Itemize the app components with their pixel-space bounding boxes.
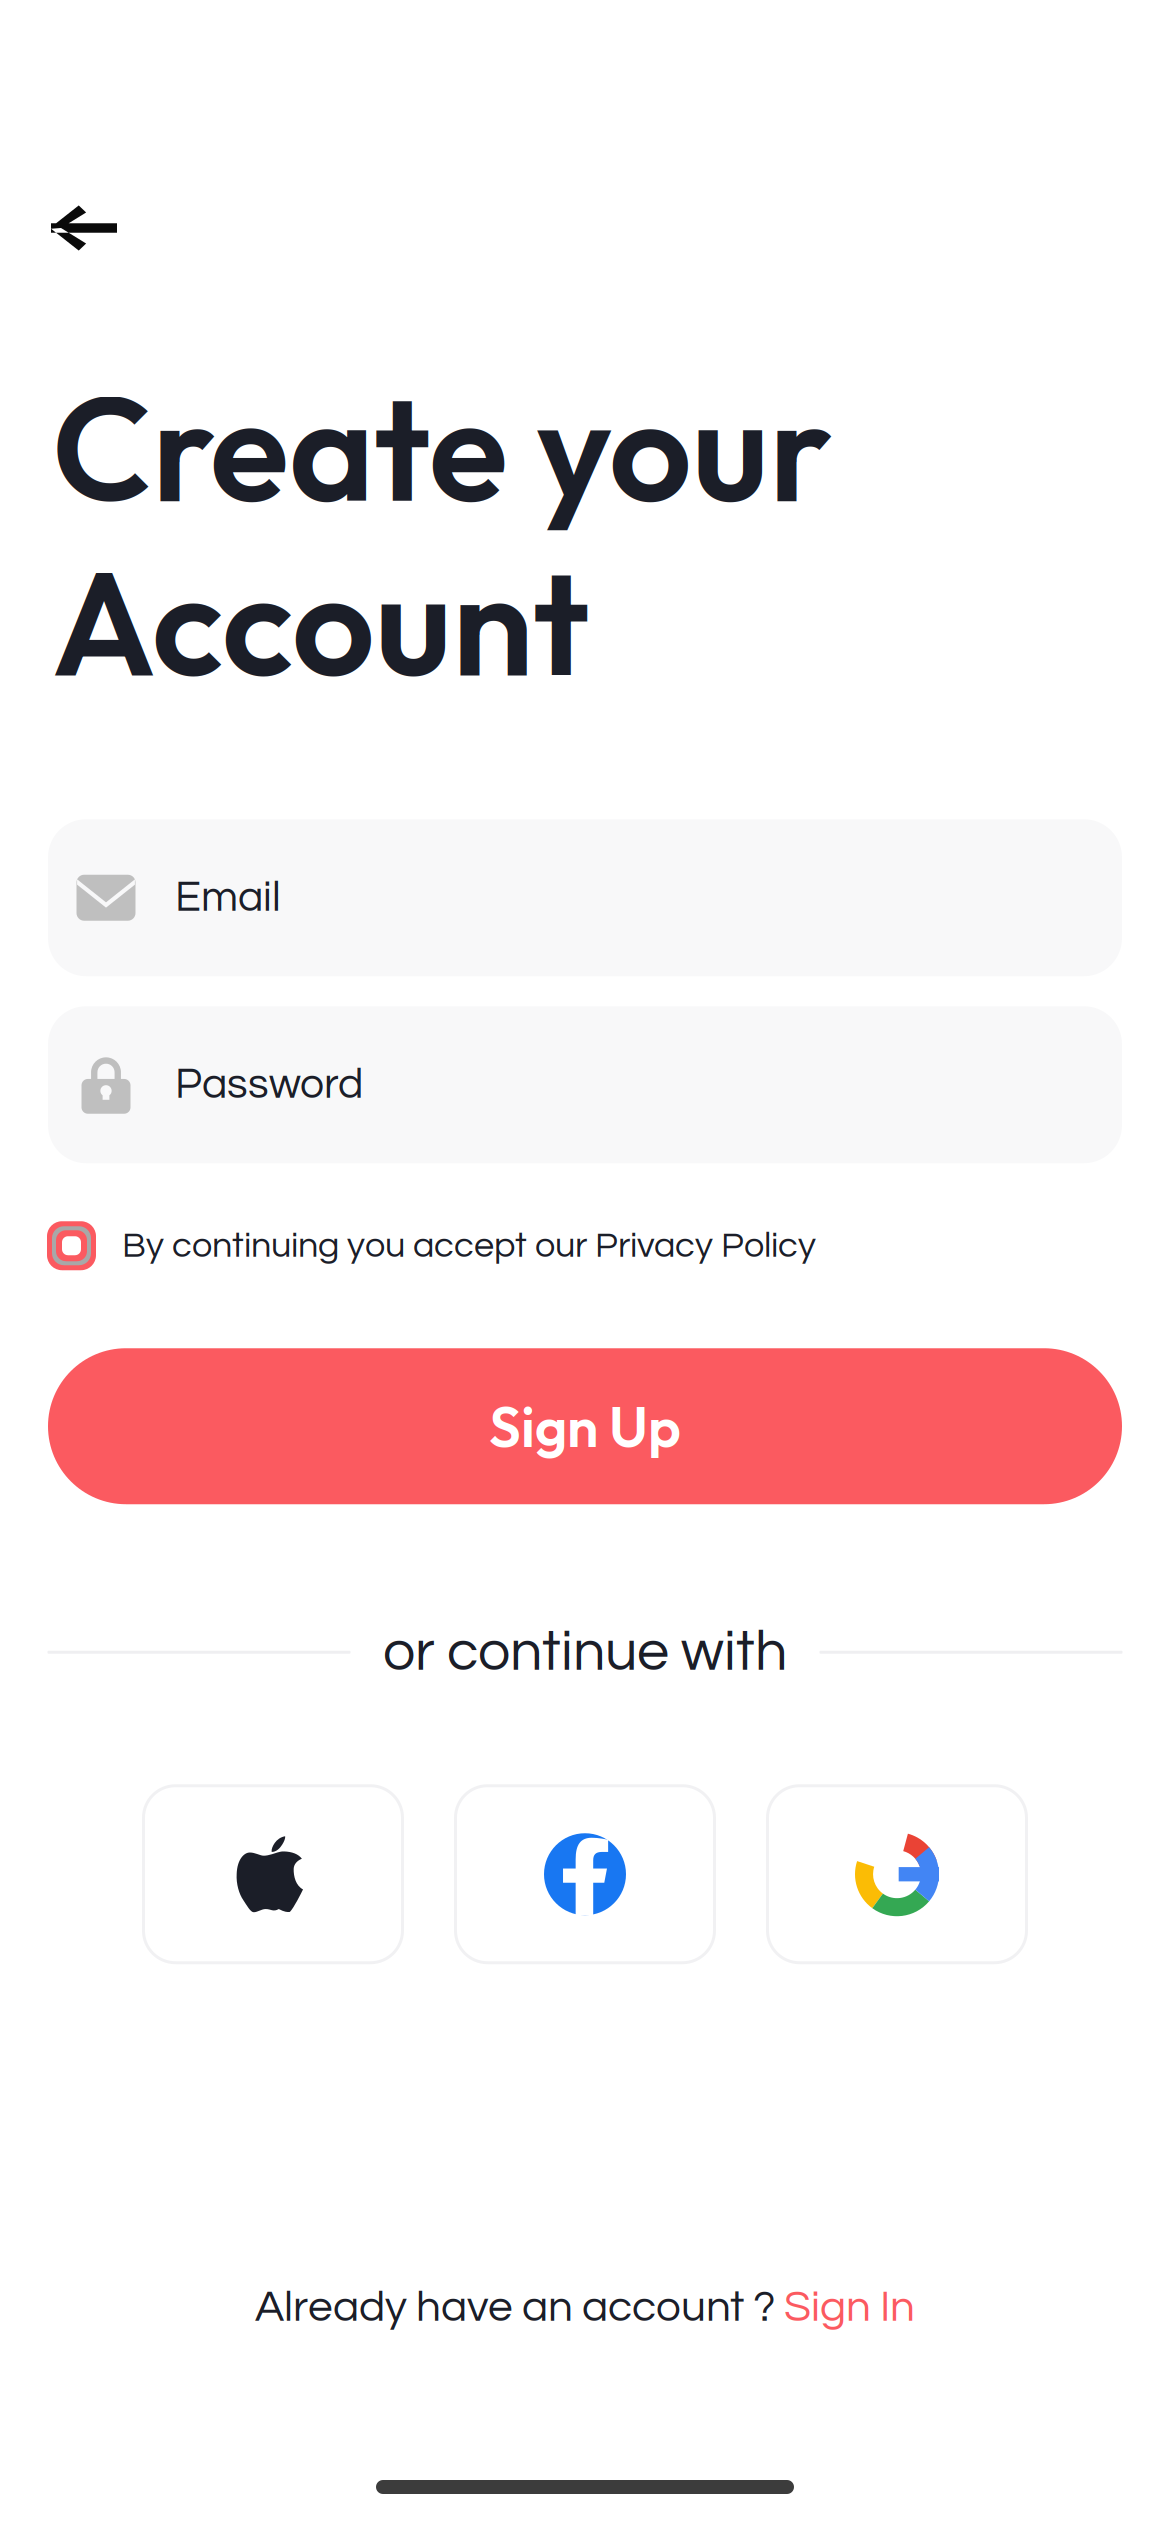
staticText: By continuing you accept our Privacy Pol… (122, 1227, 816, 1264)
staticText: Already have an account ? (255, 2285, 784, 2330)
button[interactable]: Back (0, 170, 151, 286)
button[interactable]: Sign up with Apple (142, 1784, 404, 1964)
button[interactable]: Sign up with Facebook (454, 1784, 716, 1964)
staticText: Create your (52, 356, 832, 539)
button[interactable]: Already have an account ? (255, 2285, 915, 2330)
staticText: Sign Up (489, 1391, 681, 1462)
button[interactable]: Accept privacy policy (47, 1221, 96, 1270)
button[interactable]: Sign up with Google (766, 1784, 1028, 1964)
staticText: or continue with (383, 1623, 787, 1682)
staticText: Account (52, 530, 590, 713)
button[interactable]: Sign Up (48, 1348, 1122, 1504)
staticText: Password (175, 1063, 363, 1107)
staticText: Sign In (784, 2285, 915, 2330)
staticText: Email (175, 876, 281, 920)
